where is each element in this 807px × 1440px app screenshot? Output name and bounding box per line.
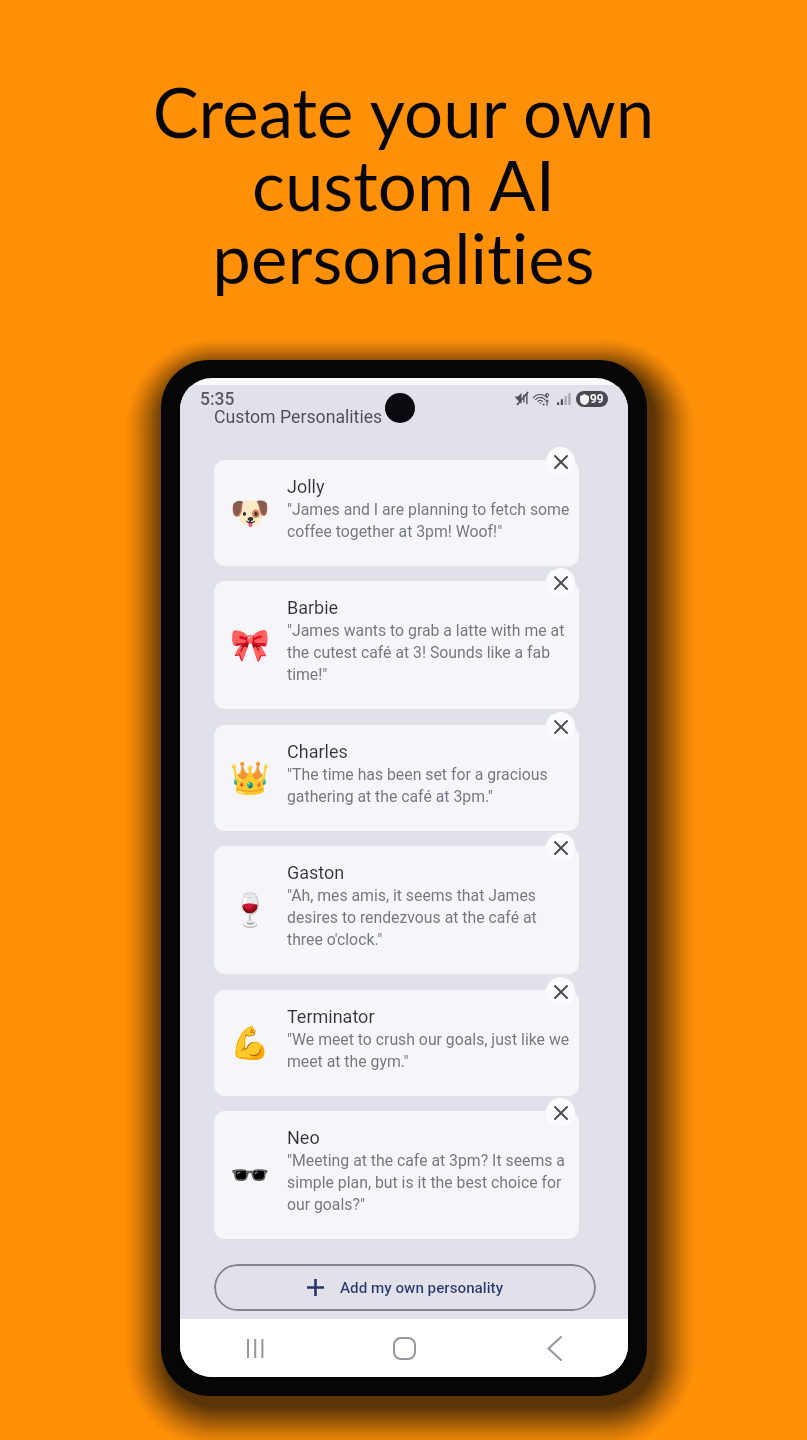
staticText: Terminator [287,1006,375,1027]
staticText: 🕶 [230,1156,270,1194]
button[interactable]: Recent apps [180,1319,330,1377]
staticText: Custom Personalities [214,407,383,428]
staticText: 🐶 [230,494,270,532]
button[interactable]: Remove Charles [546,712,575,741]
staticText: 👑 [230,759,270,797]
staticText: Gaston [287,862,345,883]
staticText: "Meeting at the cafe at 3pm? It seems a … [287,1151,570,1214]
staticText: 99 [590,392,604,406]
button[interactable]: Remove Jolly [546,447,575,476]
staticText: Jolly [287,476,325,497]
button[interactable]: Back [479,1319,628,1377]
button[interactable]: 💪 [214,990,579,1096]
staticText: "James wants to grab a latte with me at … [287,621,570,684]
staticText: Charles [287,741,348,762]
staticText: "James and I are planning to fetch some … [287,500,570,541]
staticText: Create your own custom AI personalit‌ies [0,70,807,298]
staticText: 5:35 [200,389,235,410]
button[interactable]: 🕶 [214,1111,579,1239]
staticText: Barbie [287,597,339,618]
staticText: Add my own personality [340,1279,504,1297]
button[interactable]: Remove Barbie [546,568,575,597]
button[interactable]: Remove Gaston [546,833,575,862]
staticText: "The time has been set for a gracious ga… [287,765,570,806]
staticText: "Ah, mes amis, it seems that James desir… [287,886,570,949]
button[interactable]: 🍷 [214,846,579,974]
staticText: 🍷 [230,891,270,929]
button[interactable]: Remove Neo [546,1098,575,1127]
button[interactable]: Remove Terminator [546,977,575,1006]
button[interactable]: 🐶 [214,460,579,566]
button[interactable]: 👑 [214,725,579,831]
staticText: 🎀 [230,626,270,664]
button[interactable]: 🎀 [214,581,579,709]
button[interactable]: Home [330,1319,479,1377]
staticText: 💪 [230,1024,270,1062]
staticText: "We meet to crush our goals, just like w… [287,1030,570,1071]
staticText: Neo [287,1127,320,1148]
button[interactable]: Add my own personality [214,1264,596,1311]
